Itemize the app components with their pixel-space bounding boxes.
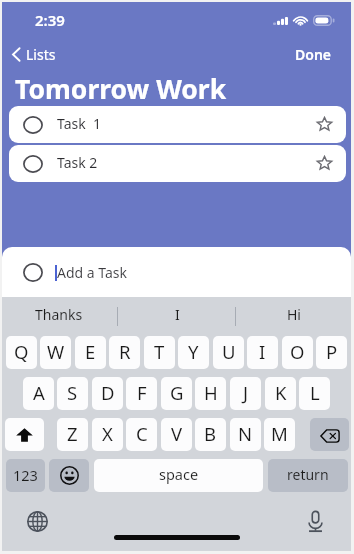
button[interactable]: Thanks <box>0 301 118 327</box>
button[interactable]: H <box>195 377 226 410</box>
button[interactable]: D <box>92 377 123 410</box>
button[interactable]: T <box>144 336 175 369</box>
staticText: Add a Task <box>57 263 127 282</box>
button[interactable]: Z <box>57 418 88 451</box>
staticText: Q <box>14 339 29 364</box>
staticText: S <box>67 380 78 405</box>
button[interactable]: Lists <box>11 42 56 66</box>
button[interactable]: C <box>126 418 157 451</box>
staticText: P <box>326 339 338 364</box>
staticText: K <box>275 380 287 405</box>
staticText: U <box>222 339 236 364</box>
button[interactable]: Q <box>6 336 37 369</box>
button[interactable]: I <box>247 336 278 369</box>
button[interactable]: Change keyboard <box>27 511 48 532</box>
staticText: Hi <box>287 305 301 324</box>
button[interactable]: R <box>109 336 140 369</box>
staticText: X <box>102 421 113 446</box>
button[interactable]: Done <box>295 42 332 66</box>
button[interactable]: return <box>268 459 348 492</box>
button[interactable]: B <box>195 418 226 451</box>
staticText: return <box>287 465 329 484</box>
button[interactable]: Backspace <box>310 418 349 451</box>
staticText: Done <box>295 45 332 64</box>
button[interactable]: Favorite <box>316 156 333 170</box>
staticText: R <box>119 339 131 364</box>
button[interactable]: M <box>264 418 295 451</box>
button[interactable]: X <box>92 418 123 451</box>
staticText: L <box>310 380 320 405</box>
button[interactable]: 123 <box>6 459 45 492</box>
staticText: Thanks <box>35 305 83 324</box>
button[interactable]: space <box>94 459 263 492</box>
staticText: 123 <box>13 465 38 485</box>
button[interactable]: O <box>282 336 313 369</box>
button[interactable]: W <box>40 336 71 369</box>
button[interactable]: Task 2 <box>9 145 346 182</box>
staticText: M <box>271 421 288 446</box>
button[interactable]: U <box>213 336 244 369</box>
button[interactable]: I <box>118 301 236 327</box>
staticText: Y <box>188 339 199 364</box>
button[interactable]: N <box>230 418 261 451</box>
staticText: I <box>259 339 266 364</box>
button[interactable]: E <box>75 336 106 369</box>
staticText: E <box>85 339 96 364</box>
staticText: B <box>204 421 217 446</box>
button[interactable]: G <box>161 377 192 410</box>
button[interactable]: Shift <box>5 418 44 451</box>
button[interactable]: A <box>23 377 54 410</box>
staticText: Task 2 <box>57 153 98 172</box>
button[interactable]: L <box>299 377 330 410</box>
button[interactable]: J <box>230 377 261 410</box>
staticText: Tomorrow Work <box>15 71 227 107</box>
staticText: T <box>154 339 165 364</box>
button[interactable]: F <box>126 377 157 410</box>
button[interactable]: S <box>57 377 88 410</box>
button[interactable]: V <box>161 418 192 451</box>
button[interactable]: Hi <box>236 301 351 327</box>
staticText: H <box>204 380 218 405</box>
button[interactable]: Task 1 <box>9 106 346 143</box>
staticText: F <box>137 380 147 405</box>
button[interactable]: Favorite <box>316 117 333 131</box>
staticText: C <box>136 421 148 446</box>
staticText: Lists <box>26 45 56 64</box>
button[interactable]: Emoji <box>49 459 89 492</box>
button[interactable]: Dictate <box>306 510 325 533</box>
staticText: O <box>290 339 305 364</box>
staticText: space <box>159 464 199 484</box>
button[interactable]: P <box>316 336 347 369</box>
staticText: D <box>101 380 115 405</box>
staticText: V <box>171 421 183 446</box>
staticText: N <box>238 421 253 446</box>
button[interactable]: K <box>265 377 296 410</box>
staticText: I <box>175 305 180 324</box>
staticText: A <box>33 380 45 405</box>
staticText: W <box>47 339 65 364</box>
staticText: 2:39 <box>35 10 65 30</box>
staticText: Z <box>67 421 78 446</box>
staticText: J <box>243 380 249 405</box>
staticText: G <box>170 380 184 405</box>
button[interactable]: Y <box>178 336 209 369</box>
staticText: Task 1 <box>57 114 101 133</box>
button[interactable]: Add a Task <box>2 247 351 297</box>
